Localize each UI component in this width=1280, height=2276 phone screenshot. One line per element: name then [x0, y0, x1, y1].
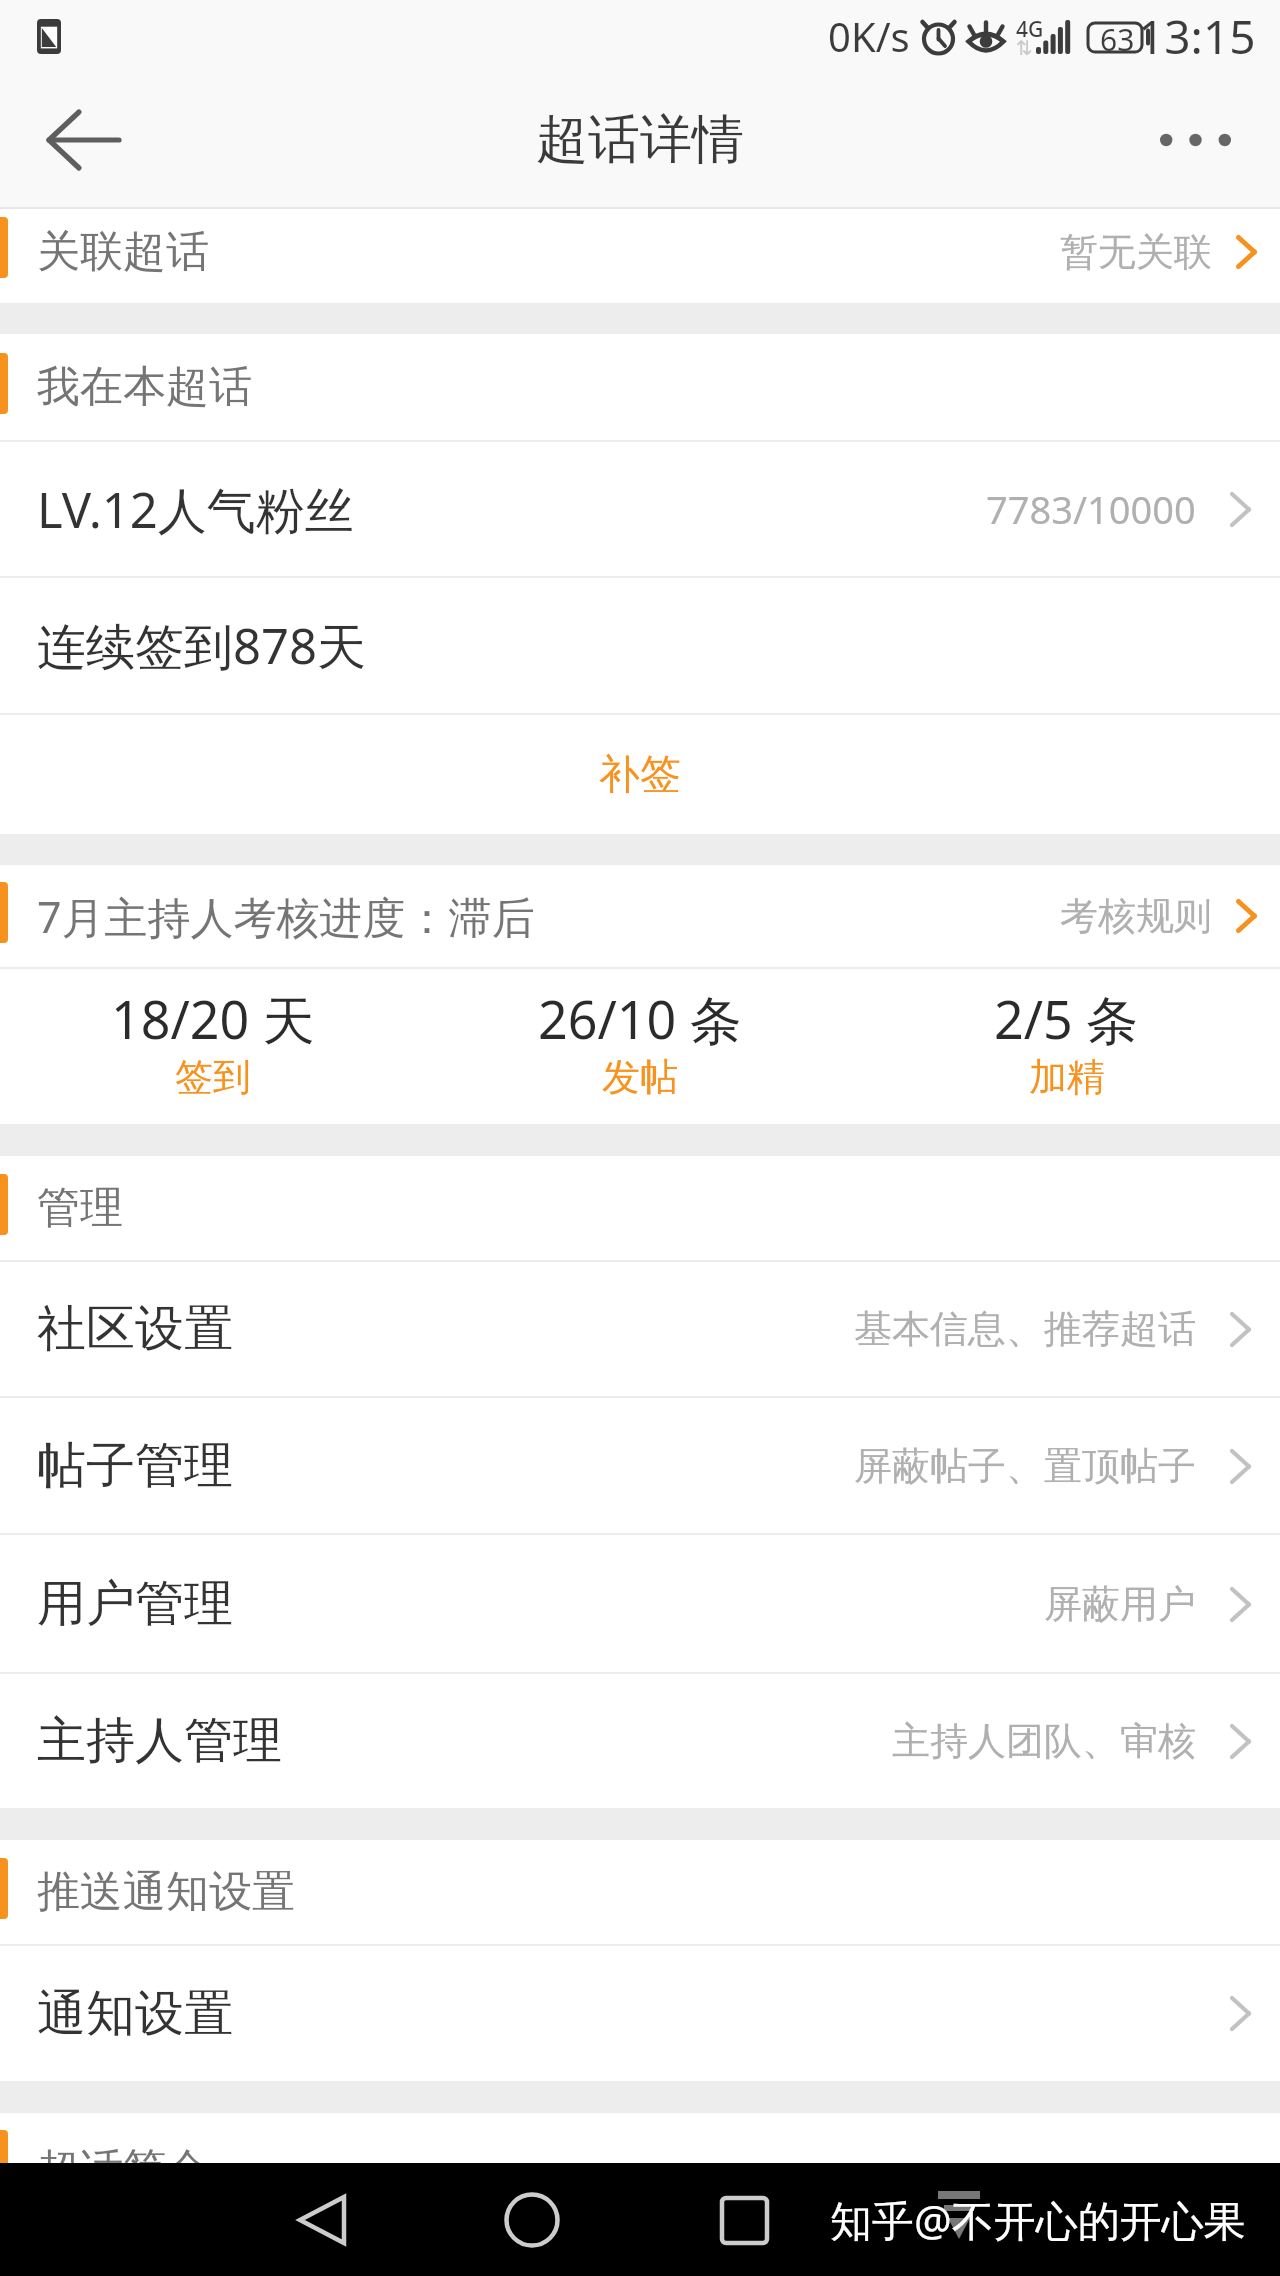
- staticText: 主持人管理: [37, 1710, 282, 1772]
- staticText: 社区设置: [37, 1298, 233, 1360]
- staticText: 0K/s: [828, 9, 910, 63]
- button[interactable]: Home: [484, 2172, 580, 2268]
- button[interactable]: 7月主持人考核进度：滞后: [0, 865, 1280, 967]
- staticText: 超话简介: [37, 2143, 209, 2163]
- button[interactable]: 推送通知设置: [0, 1840, 1280, 1944]
- staticText: 屏蔽用户: [1044, 1580, 1196, 1628]
- staticText: 63: [1100, 19, 1135, 60]
- staticText: 补签: [599, 749, 681, 801]
- button[interactable]: Recent apps: [696, 2172, 792, 2268]
- staticText: LV.12人气粉丝: [37, 476, 354, 543]
- staticText: 2/5 条: [994, 983, 1139, 1054]
- button[interactable]: 通知设置: [0, 1946, 1280, 2081]
- staticText: 通知设置: [37, 1983, 233, 2045]
- button[interactable]: 关联超话: [0, 209, 1280, 294]
- staticText: 管理: [37, 1181, 123, 1235]
- staticText: 连续签到878天: [37, 612, 367, 679]
- staticText: 我在本超话: [37, 360, 252, 414]
- staticText: 26/10 条: [538, 983, 742, 1054]
- staticText: 基本信息、推荐超话: [854, 1305, 1196, 1353]
- staticText: 13:15: [1138, 5, 1256, 68]
- staticText: 关联超话: [37, 225, 209, 279]
- staticText: 超话详情: [536, 107, 744, 173]
- staticText: 用户管理: [37, 1573, 233, 1635]
- staticText: 主持人团队、审核: [892, 1717, 1196, 1765]
- staticText: 发帖: [602, 1053, 678, 1101]
- staticText: 7783/10000: [986, 483, 1196, 535]
- button[interactable]: More options: [1141, 86, 1249, 194]
- staticText: ⇅: [1016, 36, 1033, 59]
- button[interactable]: LV.12人气粉丝: [0, 442, 1280, 576]
- button[interactable]: 我在本超话: [0, 334, 1280, 440]
- staticText: 签到: [175, 1053, 251, 1101]
- staticText: 4G: [1016, 15, 1044, 44]
- button[interactable]: 用户管理: [0, 1535, 1280, 1672]
- staticText: 考核规则: [1060, 892, 1212, 940]
- button[interactable]: 连续签到878天: [0, 578, 1280, 713]
- staticText: 帖子管理: [37, 1435, 233, 1497]
- button[interactable]: 主持人管理: [0, 1674, 1280, 1808]
- staticText: 加精: [1029, 1053, 1105, 1101]
- button[interactable]: Back: [30, 86, 138, 194]
- staticText: 7月主持人考核进度：滞后: [37, 887, 535, 946]
- button[interactable]: 超话简介: [0, 2113, 1280, 2163]
- button[interactable]: 补签: [0, 715, 1280, 834]
- staticText: 屏蔽帖子、置顶帖子: [854, 1442, 1196, 1490]
- button[interactable]: 帖子管理: [0, 1398, 1280, 1533]
- staticText: 18/20 天: [111, 983, 315, 1054]
- button[interactable]: 社区设置: [0, 1262, 1280, 1396]
- staticText: 推送通知设置: [37, 1865, 295, 1919]
- button[interactable]: Back: [274, 2172, 370, 2268]
- staticText: 知乎@不开心的开心果: [830, 2191, 1246, 2248]
- staticText: 暂无关联: [1060, 228, 1212, 276]
- button[interactable]: 管理: [0, 1156, 1280, 1260]
